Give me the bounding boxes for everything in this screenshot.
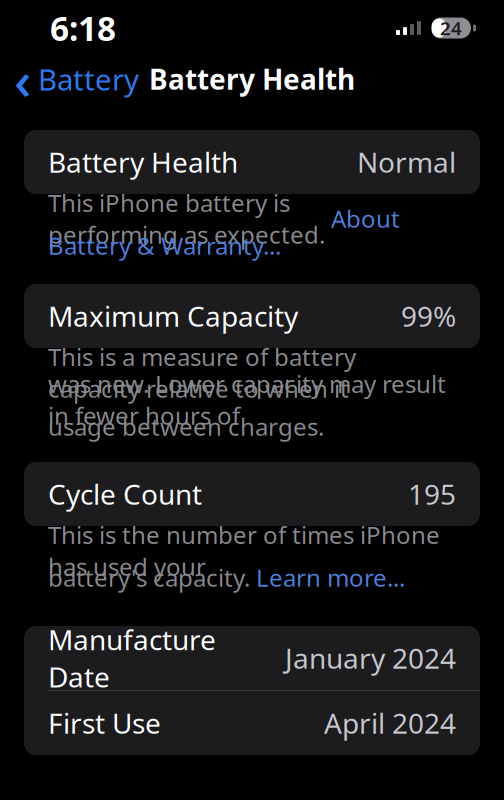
staticText: Battery Health: [149, 60, 355, 98]
staticText: Normal: [357, 143, 456, 181]
staticText: was new. Lower capacity may result in fe…: [48, 368, 446, 431]
staticText: This is a measure of battery capacity re…: [48, 341, 356, 404]
staticText: Battery & Warranty...: [48, 230, 281, 261]
button[interactable]: Battery Health: [24, 130, 480, 194]
staticText: Learn more...: [256, 562, 405, 593]
staticText: Cycle Count: [48, 475, 202, 513]
staticText: About: [331, 203, 400, 234]
staticText: Battery: [38, 59, 139, 98]
staticText: 195: [408, 475, 456, 513]
button[interactable]: Maximum Capacity: [24, 284, 480, 348]
staticText: 99%: [401, 297, 456, 335]
staticText: January 2024: [285, 639, 456, 677]
staticText: usage between charges.: [48, 411, 324, 442]
staticText: April 2024: [324, 704, 456, 742]
staticText: This is the number of times iPhone has u…: [48, 519, 440, 582]
staticText: 24: [440, 16, 462, 40]
staticText: First Use: [48, 704, 161, 742]
staticText: 6:18: [50, 6, 116, 50]
button[interactable]: Manufacture Date: [24, 626, 480, 690]
staticText: battery's capacity.: [48, 562, 256, 593]
button[interactable]: Cycle Count: [24, 462, 480, 526]
button[interactable]: First Use: [24, 691, 480, 755]
staticText: Battery Health: [48, 143, 238, 181]
staticText: This iPhone battery is performing as exp…: [48, 187, 331, 250]
staticText: Manufacture Date: [48, 621, 216, 695]
button[interactable]: ‹: [0, 56, 149, 102]
staticText: ‹: [14, 44, 31, 114]
staticText: Maximum Capacity: [48, 297, 298, 335]
